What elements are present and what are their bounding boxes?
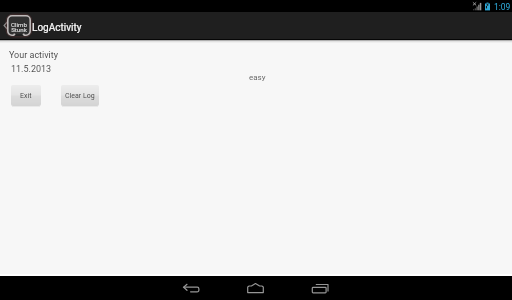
staticText: Your activity	[9, 50, 58, 61]
staticText: 11.5.2013	[11, 64, 52, 75]
button[interactable]: Home	[240, 276, 272, 300]
staticText: Climb Stunk	[11, 21, 27, 33]
staticText: Clear Log	[65, 92, 95, 100]
staticText: LogActivity	[32, 22, 82, 34]
staticText: easy	[249, 73, 266, 82]
button[interactable]: Clear Log	[61, 85, 99, 106]
staticText: Exit	[20, 92, 32, 100]
staticText: 1:09	[494, 2, 511, 12]
button[interactable]: Recent apps	[304, 276, 336, 300]
button[interactable]: Navigate up	[1, 12, 33, 39]
button[interactable]: Exit	[11, 85, 41, 106]
button[interactable]: Back	[176, 276, 208, 300]
